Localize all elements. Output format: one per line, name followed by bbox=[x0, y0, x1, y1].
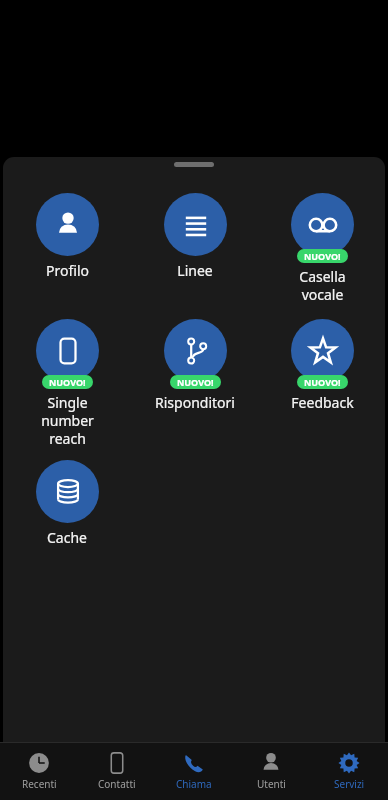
staticText: NUOVO! bbox=[304, 250, 341, 262]
staticText: Profilo bbox=[46, 261, 89, 280]
staticText: NUOVO! bbox=[177, 376, 214, 388]
staticText: Utenti bbox=[257, 777, 286, 791]
staticText: NUOVO! bbox=[49, 376, 86, 388]
staticText: Recenti bbox=[22, 777, 57, 791]
staticText: Servizi bbox=[334, 777, 365, 791]
button[interactable]: Linee bbox=[139, 193, 251, 280]
button[interactable]: Servizi bbox=[311, 748, 387, 795]
staticText: Chiama bbox=[176, 777, 212, 791]
button[interactable]: Profilo bbox=[11, 193, 123, 280]
button[interactable]: NUOVO! bbox=[266, 319, 378, 412]
staticText: NUOVO! bbox=[304, 376, 341, 388]
staticText: Feedback bbox=[291, 393, 354, 412]
button[interactable]: Cache bbox=[11, 460, 123, 547]
button[interactable]: NUOVO! bbox=[266, 193, 378, 304]
staticText: Single number reach bbox=[41, 393, 94, 448]
button[interactable]: Utenti bbox=[233, 748, 309, 795]
button[interactable]: NUOVO! bbox=[11, 319, 123, 448]
staticText: Linee bbox=[177, 261, 213, 280]
button[interactable]: Chiama bbox=[156, 748, 232, 795]
staticText: Risponditori bbox=[155, 393, 235, 412]
button[interactable]: Contatti bbox=[79, 748, 155, 795]
button[interactable]: NUOVO! bbox=[139, 319, 251, 412]
staticText: Casella vocale bbox=[299, 267, 346, 304]
button[interactable]: Recenti bbox=[1, 748, 77, 795]
staticText: Cache bbox=[47, 528, 87, 547]
staticText: Contatti bbox=[98, 777, 136, 791]
